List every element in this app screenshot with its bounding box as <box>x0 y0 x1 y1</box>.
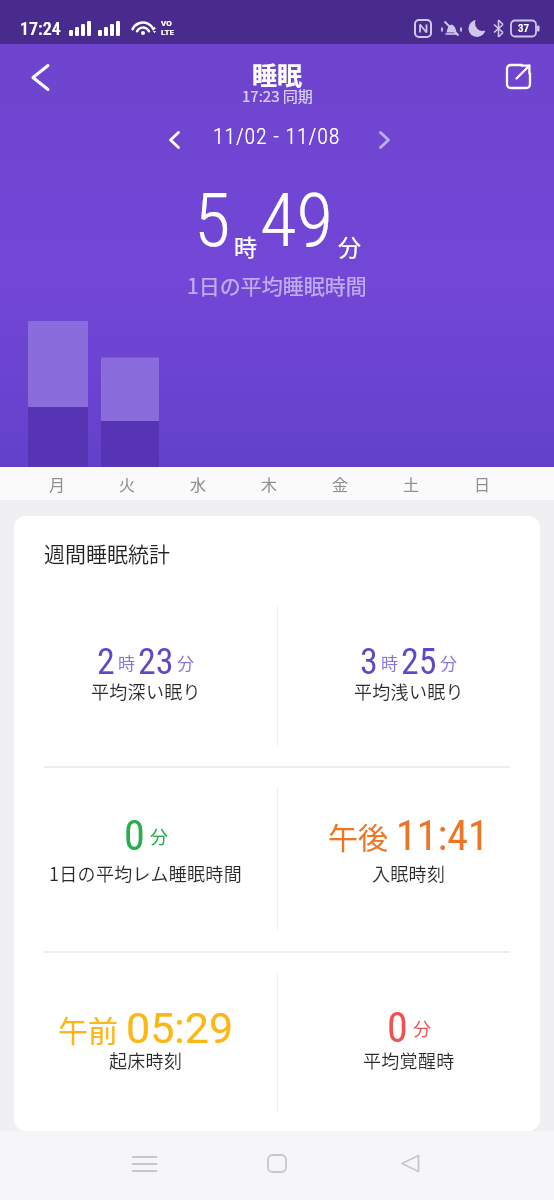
staticText: 49 <box>260 176 333 264</box>
staticText: 睡眠 <box>252 56 303 92</box>
staticText: 分 <box>150 823 168 849</box>
staticText: VO <box>161 19 172 28</box>
staticText: 0 <box>387 1003 408 1052</box>
staticText: 17:23 同期 <box>242 85 313 107</box>
staticText: 分 <box>177 650 194 675</box>
staticText: 37 <box>518 22 530 35</box>
staticText: 午前 <box>58 1007 118 1050</box>
staticText: 1日の平均レム睡眠時間 <box>49 860 242 886</box>
staticText: 木 <box>261 472 278 495</box>
staticText: LTE <box>161 28 174 37</box>
staticText: 午後 <box>328 814 388 857</box>
staticText: 月 <box>49 472 66 495</box>
staticText: 11:41 <box>396 811 489 860</box>
staticText: 火 <box>119 472 136 495</box>
staticText: 分 <box>413 1015 431 1041</box>
staticText: 3 <box>360 641 378 683</box>
staticText: 土 <box>403 472 420 495</box>
staticText: 平均覚醒時 <box>363 1047 455 1073</box>
staticText: 水 <box>190 472 207 495</box>
staticText: 金 <box>332 472 349 495</box>
staticText: 時 <box>118 650 135 675</box>
staticText: 時 <box>381 650 398 675</box>
staticText: 分 <box>338 229 361 262</box>
staticText: 1日の平均睡眠時間 <box>187 270 367 300</box>
staticText: 5 <box>194 176 231 264</box>
staticText: 分 <box>440 650 457 675</box>
staticText: 起床時刻 <box>109 1047 183 1073</box>
staticText: 05:29 <box>126 1003 234 1053</box>
staticText: 11/02 - 11/08 <box>213 124 341 150</box>
staticText: 25 <box>401 641 437 683</box>
staticText: 17:24 <box>20 18 61 39</box>
staticText: 日 <box>474 472 491 495</box>
staticText: 2 <box>97 641 115 683</box>
staticText: 0 <box>124 811 145 860</box>
staticText: 週間睡眠統計 <box>44 538 170 568</box>
staticText: 平均深い眠り <box>91 678 201 704</box>
staticText: 平均浅い眠り <box>354 678 464 704</box>
staticText: 時 <box>234 229 257 262</box>
staticText: 23 <box>138 641 174 683</box>
staticText: 入眠時刻 <box>372 860 446 886</box>
